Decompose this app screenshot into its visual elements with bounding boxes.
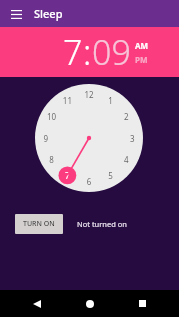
button[interactable]: 09 — [92, 29, 131, 75]
button[interactable]: Recent apps — [127, 290, 157, 317]
button[interactable]: Back — [22, 290, 52, 317]
staticText: Sleep — [34, 6, 63, 21]
button[interactable]: TURN ON — [15, 214, 63, 234]
staticText: TURN ON — [23, 219, 55, 229]
staticText: : — [83, 29, 92, 75]
button[interactable]: Open navigation menu — [6, 4, 26, 24]
button[interactable]: AM — [135, 40, 149, 51]
button[interactable]: PM — [135, 54, 148, 65]
button[interactable]: Home — [75, 290, 105, 317]
staticText: Not turned on — [77, 219, 127, 229]
button[interactable]: Clock hour picker — [35, 84, 143, 192]
staticText: PM — [135, 54, 148, 65]
staticText: AM — [135, 40, 149, 51]
button[interactable]: 7 — [63, 29, 83, 75]
